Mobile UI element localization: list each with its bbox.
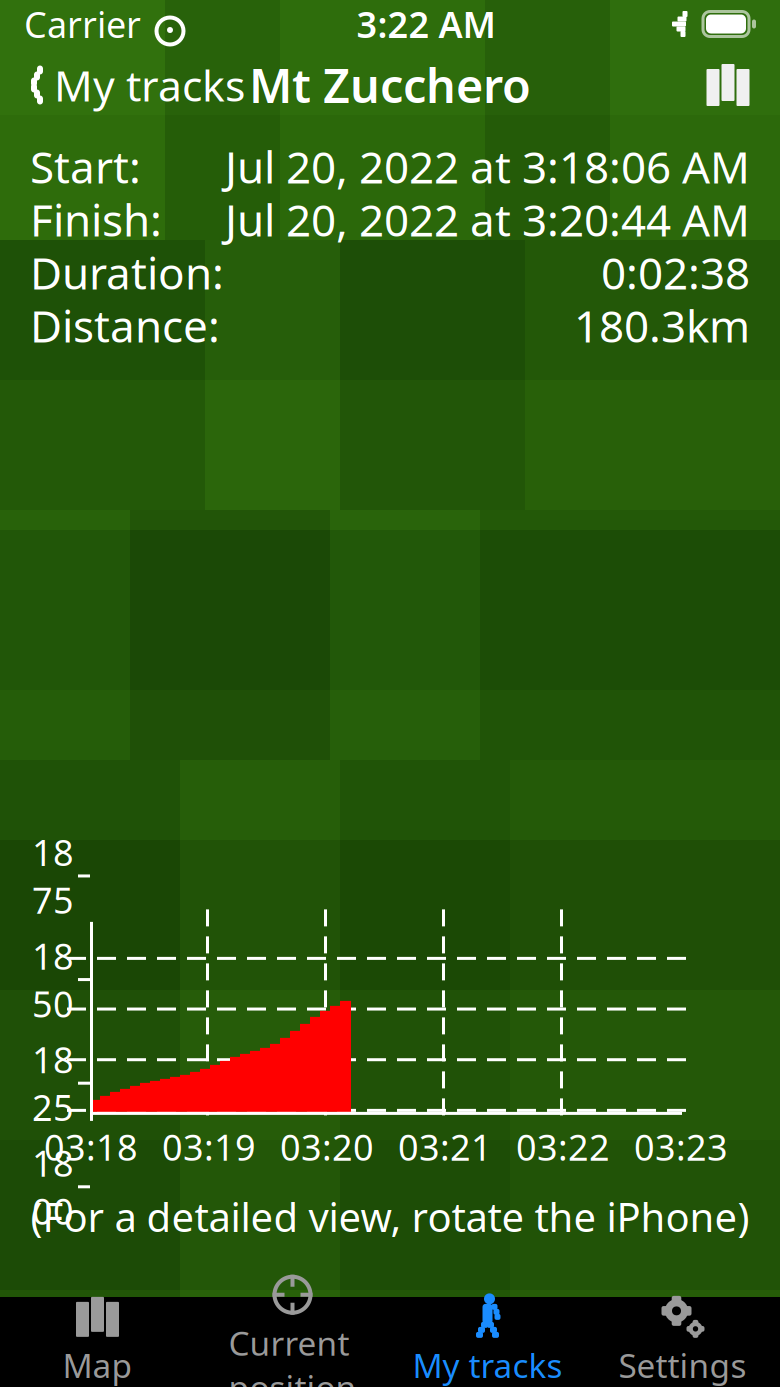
button[interactable]: Show track on map bbox=[706, 56, 780, 114]
staticText: 1850 bbox=[32, 932, 74, 1027]
staticText: 1875 bbox=[32, 828, 74, 924]
button[interactable]: Map bbox=[0, 1289, 195, 1387]
staticText: Jul 20, 2022 at 3:20:44 AM bbox=[225, 190, 750, 249]
staticText: 1825 bbox=[32, 1035, 74, 1131]
staticText: Current position bbox=[228, 1321, 356, 1387]
staticText: 03:21 bbox=[398, 1123, 492, 1171]
staticText: 03:19 bbox=[162, 1123, 256, 1171]
button[interactable]: Settings bbox=[585, 1289, 780, 1387]
button[interactable]: My tracks bbox=[390, 1289, 585, 1387]
staticText: Mt Zucchero bbox=[249, 54, 531, 116]
staticText: Finish: bbox=[30, 190, 162, 249]
staticText: Jul 20, 2022 at 3:18:06 AM bbox=[225, 137, 750, 196]
staticText: My tracks bbox=[412, 1343, 562, 1387]
staticText: Carrier bbox=[24, 0, 141, 48]
button[interactable]: My tracks bbox=[0, 49, 245, 121]
staticText: 03:23 bbox=[634, 1123, 728, 1171]
staticText: 3:22 AM bbox=[356, 0, 495, 48]
staticText: 180.3km bbox=[574, 296, 750, 355]
staticText: Settings bbox=[618, 1343, 746, 1387]
staticText: 03:22 bbox=[516, 1123, 610, 1171]
staticText: Distance: bbox=[30, 296, 220, 355]
staticText: 03:20 bbox=[280, 1123, 374, 1171]
staticText: My tracks bbox=[54, 57, 245, 113]
button[interactable]: Current position bbox=[195, 1267, 390, 1387]
staticText: 03:18 bbox=[44, 1123, 138, 1171]
staticText: 0:02:38 bbox=[601, 243, 750, 302]
staticText: (For a detailed view, rotate the iPhone) bbox=[30, 1190, 749, 1243]
staticText: Map bbox=[62, 1343, 132, 1387]
staticText: 1800 bbox=[32, 1139, 74, 1235]
staticText: Start: bbox=[30, 137, 141, 196]
staticText: Duration: bbox=[30, 243, 224, 302]
